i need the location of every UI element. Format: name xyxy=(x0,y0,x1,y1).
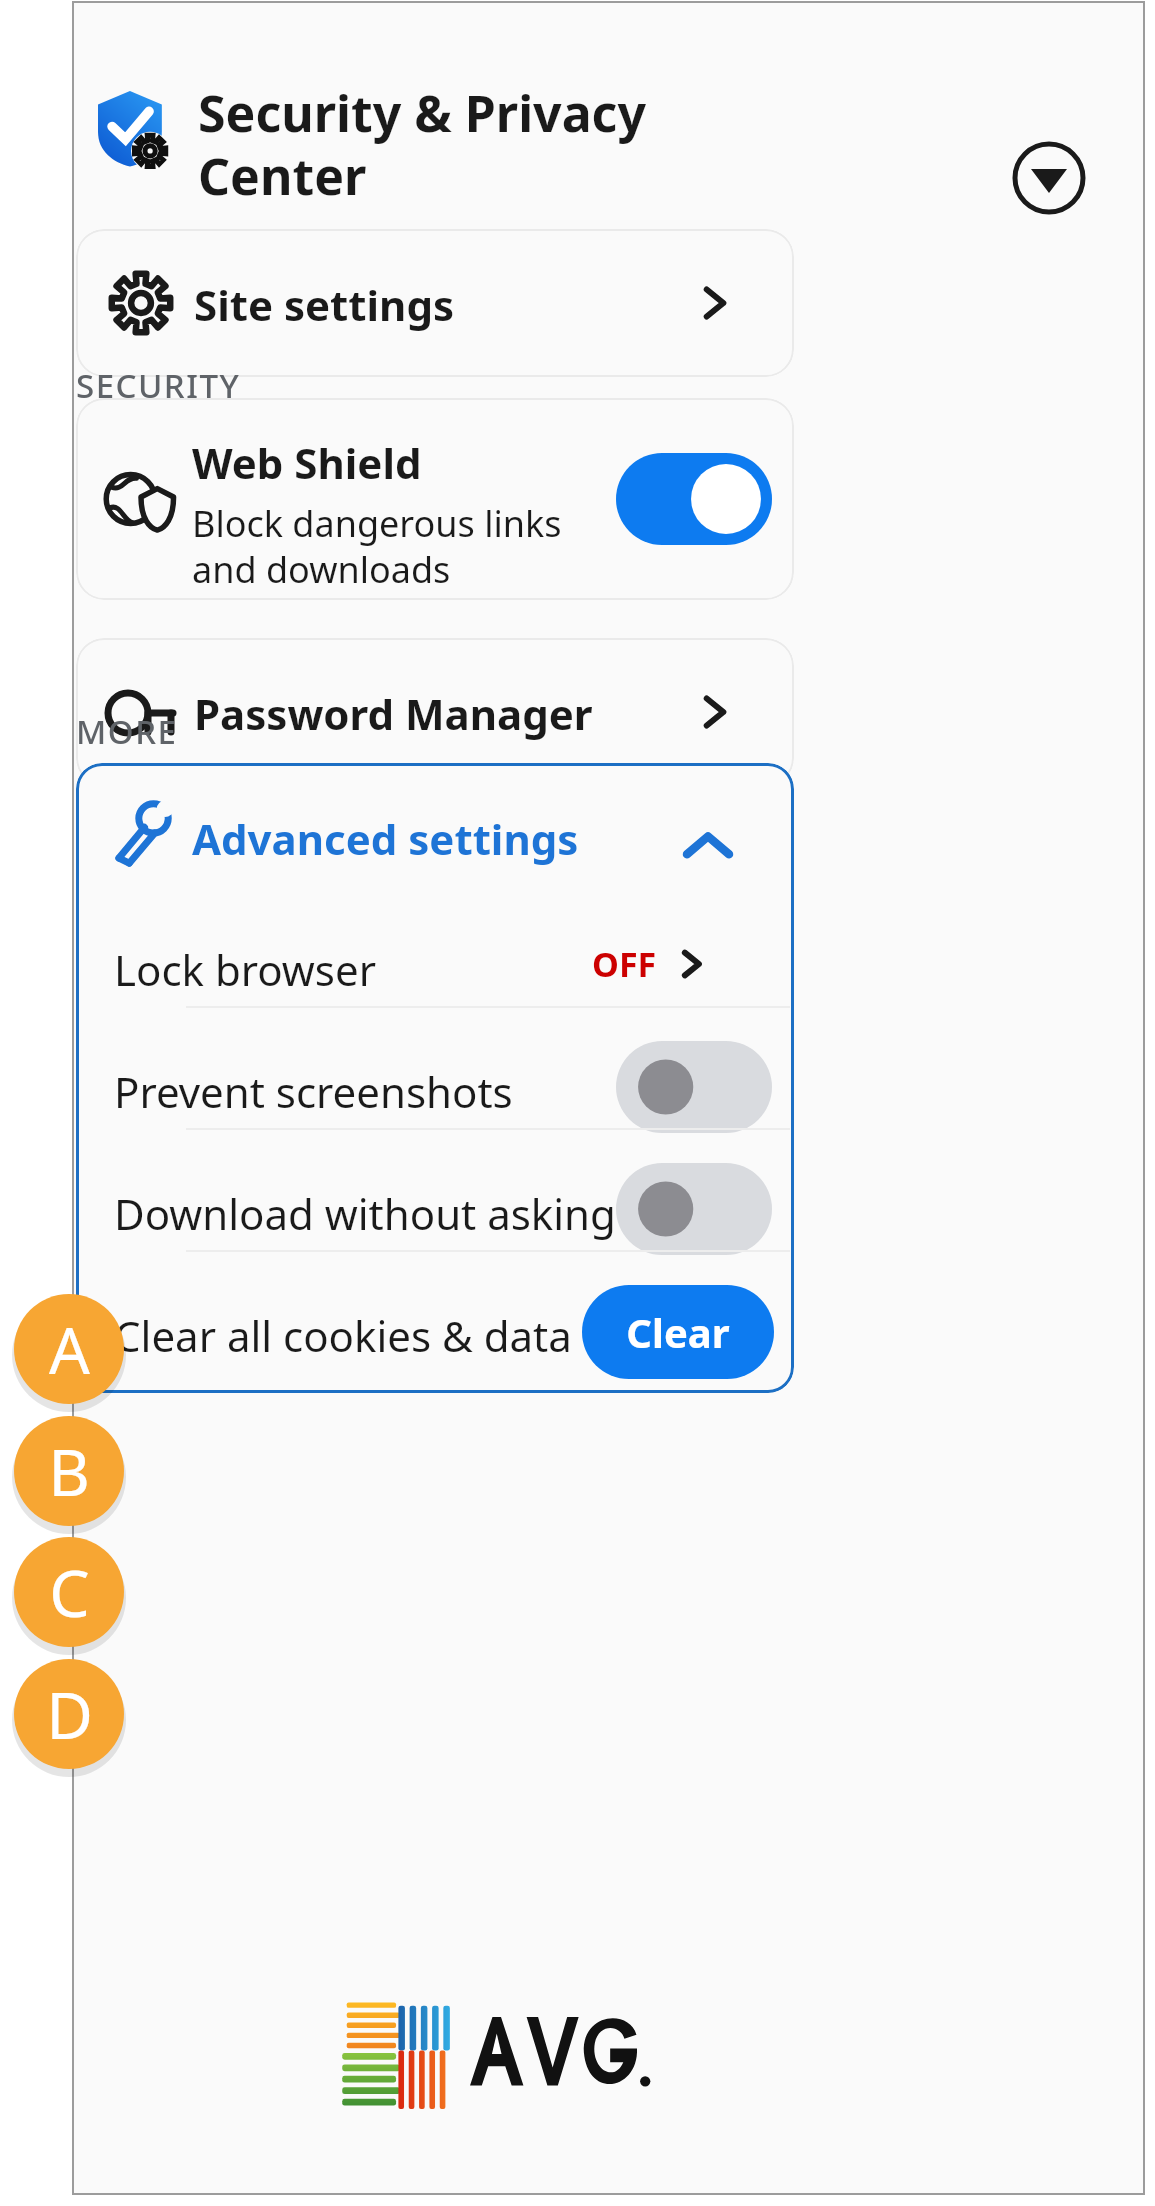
button[interactable]: Web Shield toggle xyxy=(616,453,772,545)
button[interactable]: Prevent screenshots xyxy=(76,1027,794,1149)
staticText: Block dangerous links and downloads xyxy=(192,499,592,594)
button[interactable]: Collapse panel xyxy=(1012,141,1086,215)
staticText: Clear xyxy=(626,1305,730,1359)
button[interactable]: Clear xyxy=(582,1285,774,1379)
button[interactable]: Lock browser xyxy=(76,905,794,1027)
staticText: Lock browser xyxy=(114,941,376,998)
staticText: MORE xyxy=(76,709,178,754)
button[interactable]: Password Manager xyxy=(76,638,794,786)
staticText: Download without asking xyxy=(114,1185,616,1242)
button[interactable]: Clear all cookies & data xyxy=(76,1271,794,1393)
staticText: C xyxy=(49,1549,90,1636)
staticText: SECURITY xyxy=(76,363,241,408)
staticText: Site settings xyxy=(194,276,455,333)
button[interactable]: Download without asking xyxy=(76,1149,794,1271)
button[interactable]: Site settings xyxy=(76,229,794,377)
staticText: Advanced settings xyxy=(192,810,579,867)
staticText: Prevent screenshots xyxy=(114,1063,513,1120)
staticText: D xyxy=(46,1671,93,1758)
staticText: A xyxy=(49,1306,90,1393)
button[interactable]: Download without asking toggle xyxy=(616,1163,772,1255)
button[interactable]: Advanced settings xyxy=(76,763,794,905)
staticText: Security & Privacy Center xyxy=(198,79,738,209)
staticText: Clear all cookies & data xyxy=(114,1307,572,1364)
staticText: Web Shield xyxy=(192,434,422,491)
button[interactable]: Prevent screenshots toggle xyxy=(616,1041,772,1133)
staticText: Password Manager xyxy=(194,685,593,742)
button[interactable]: Web Shield xyxy=(76,398,794,600)
staticText: OFF xyxy=(592,941,657,987)
staticText: B xyxy=(48,1428,90,1515)
